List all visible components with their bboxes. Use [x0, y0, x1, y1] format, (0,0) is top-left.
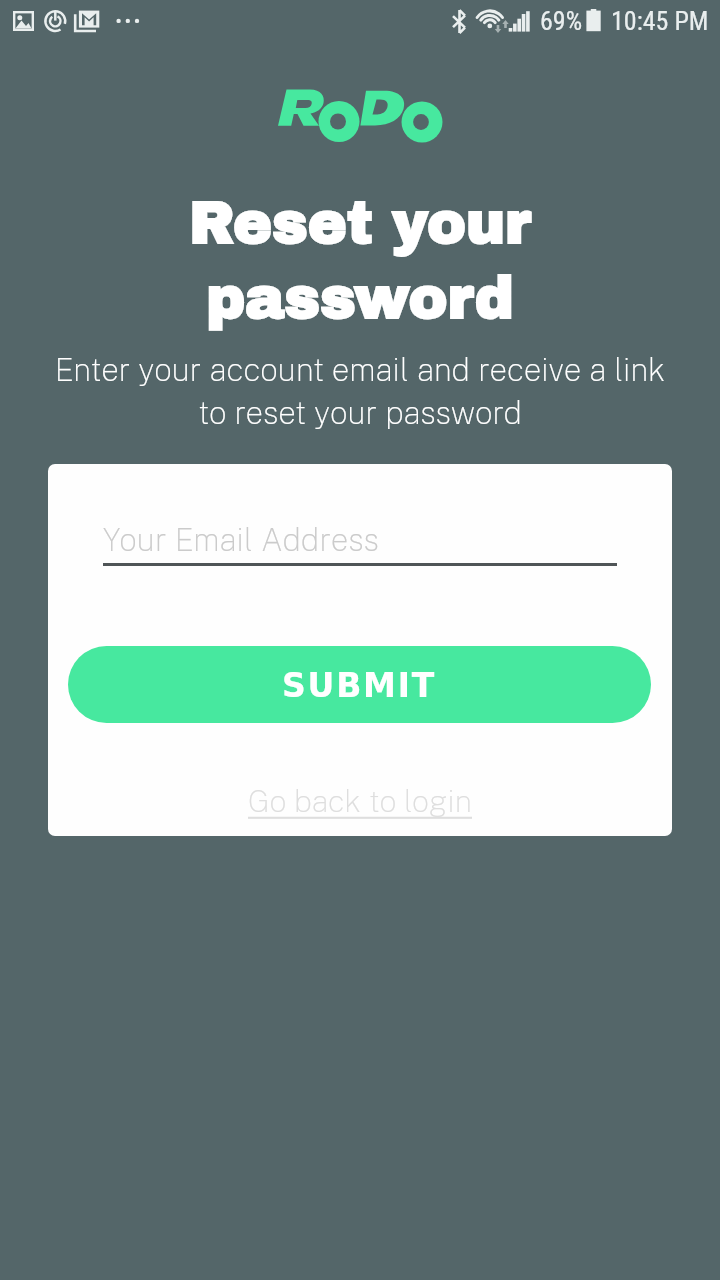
staticText: Reset your password	[80, 192, 640, 330]
staticText: Your Email Address	[103, 521, 379, 558]
staticText: Enter your account email and receive a l…	[45, 351, 675, 431]
staticText: 10:45 PM	[611, 6, 709, 36]
button[interactable]: SUBMIT	[68, 646, 651, 723]
staticText: 69%	[540, 6, 583, 36]
button[interactable]: Go back to login	[242, 779, 478, 823]
staticText: SUBMIT	[282, 666, 437, 704]
other: RoDo	[275, 86, 445, 146]
